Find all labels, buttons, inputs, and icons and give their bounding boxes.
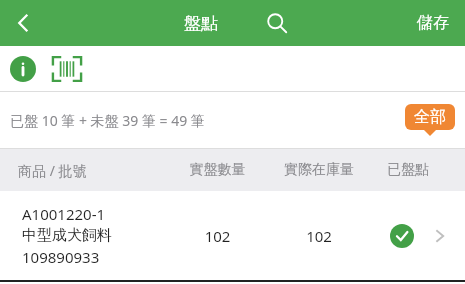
button[interactable]: Search <box>254 0 300 46</box>
staticText: 儲存 <box>417 13 449 33</box>
staticText: 商品 / 批號 <box>18 161 170 180</box>
staticText: 102 <box>265 226 373 246</box>
staticText: A1001220-1 <box>22 204 106 224</box>
button[interactable]: Information <box>8 54 38 84</box>
staticText: 實盤數量 <box>170 161 265 179</box>
button[interactable]: 儲存 <box>401 0 465 46</box>
button[interactable]: Back <box>0 0 46 46</box>
staticText: 已盤 10 筆 + 未盤 39 筆 = 49 筆 <box>10 111 205 130</box>
staticText: 中型成犬飼料 <box>22 226 112 245</box>
button[interactable]: 全部 <box>405 104 455 136</box>
button[interactable]: Scan barcode <box>48 50 86 88</box>
staticText: 109890933 <box>22 247 100 267</box>
staticText: 實際在庫量 <box>265 161 373 179</box>
staticText: 盤點 <box>184 13 218 34</box>
staticText: 全部 <box>414 107 446 127</box>
staticText: 102 <box>170 226 265 246</box>
button[interactable]: A1001220-1 <box>0 191 465 280</box>
staticText: 已盤點 <box>373 161 443 179</box>
